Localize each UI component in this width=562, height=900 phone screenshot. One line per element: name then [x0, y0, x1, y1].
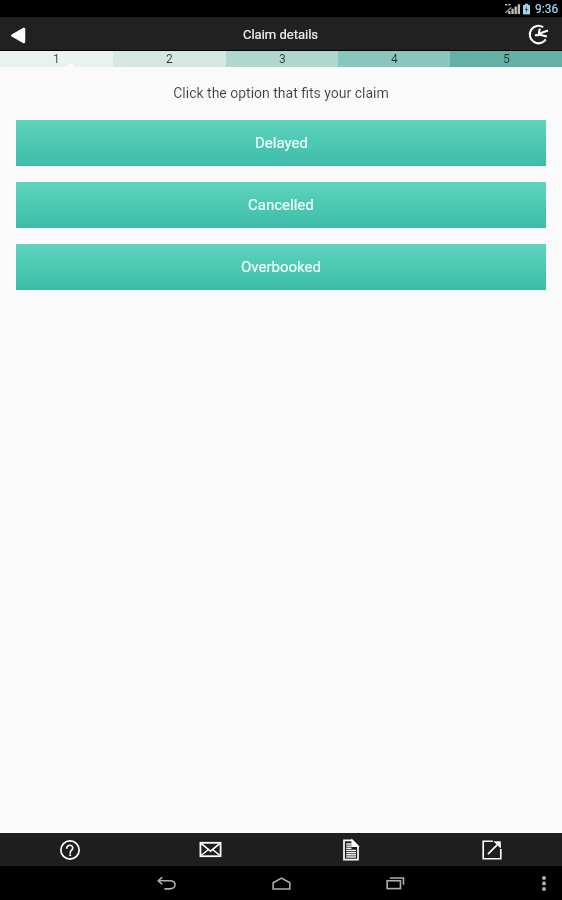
button[interactable]: Home	[266, 870, 296, 896]
button[interactable]: Overbooked	[16, 244, 546, 290]
staticText: 3	[279, 52, 286, 66]
staticText: Overbooked	[241, 258, 321, 276]
button[interactable]: Back	[0, 17, 34, 51]
button[interactable]: 5	[450, 51, 562, 67]
button[interactable]: System back	[152, 870, 182, 896]
button[interactable]: Messages	[140, 833, 280, 866]
staticText: 1	[53, 52, 60, 66]
button[interactable]: Documents	[280, 833, 421, 866]
staticText: Delayed	[255, 134, 308, 152]
button[interactable]: 1	[0, 51, 113, 67]
button[interactable]: Flight times	[516, 17, 562, 51]
staticText: Click the option that fits your claim	[0, 85, 562, 101]
button[interactable]: Open in new window	[421, 833, 562, 866]
button[interactable]: Recent apps	[380, 870, 410, 896]
staticText: 4	[391, 52, 398, 66]
button[interactable]: 4	[338, 51, 450, 67]
button[interactable]: 2	[113, 51, 226, 67]
button[interactable]: Cancelled	[16, 182, 546, 228]
staticText: Claim details	[243, 27, 319, 42]
button[interactable]: More options	[531, 870, 557, 896]
staticText: 5	[503, 52, 510, 66]
button[interactable]: Help	[0, 833, 140, 866]
button[interactable]: Delayed	[16, 120, 546, 166]
staticText: 2	[166, 52, 173, 66]
staticText: 9:36	[535, 2, 559, 16]
button[interactable]: 3	[226, 51, 338, 67]
staticText: Cancelled	[248, 196, 314, 214]
